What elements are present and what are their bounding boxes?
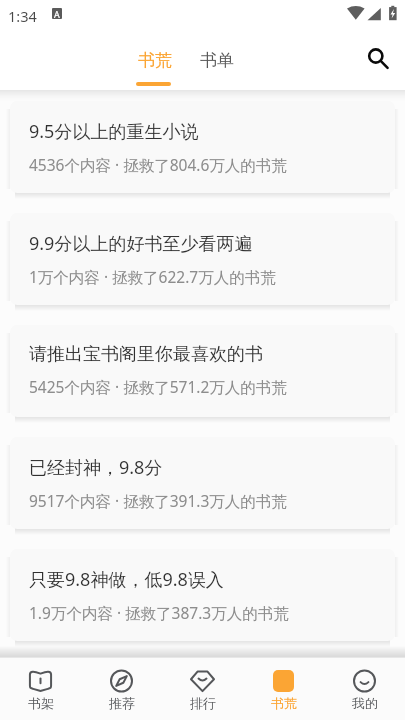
button[interactable]: Search: [356, 36, 396, 76]
button[interactable]: 9.5分以上的重生小说: [10, 101, 395, 193]
button[interactable]: 推荐: [81, 658, 162, 720]
staticText: 排行: [190, 695, 216, 711]
button[interactable]: 已经封神，9.8分: [10, 437, 395, 529]
staticText: 书架: [28, 695, 54, 711]
staticText: 1:34: [8, 6, 37, 26]
staticText: 4536个内容 · 拯救了804.6万人的书荒: [29, 154, 287, 175]
button[interactable]: 书单: [188, 34, 246, 86]
staticText: A: [54, 8, 60, 19]
button[interactable]: 9.9分以上的好书至少看两遍: [10, 213, 395, 305]
staticText: 已经封神，9.8分: [29, 455, 163, 480]
staticText: 1.9万个内容 · 拯救了387.3万人的书荒: [29, 602, 289, 623]
button[interactable]: 书架: [0, 658, 81, 720]
staticText: 9.5分以上的重生小说: [29, 119, 199, 144]
button[interactable]: 书荒: [126, 34, 184, 86]
staticText: 9517个内容 · 拯救了391.3万人的书荒: [29, 490, 287, 511]
button[interactable]: 书荒: [243, 658, 324, 720]
staticText: 9.9分以上的好书至少看两遍: [29, 231, 253, 256]
staticText: 书荒: [138, 50, 172, 71]
button[interactable]: 排行: [162, 658, 243, 720]
staticText: 书单: [200, 50, 234, 71]
staticText: 我的: [352, 695, 378, 711]
button[interactable]: 我的: [324, 658, 405, 720]
staticText: 1万个内容 · 拯救了622.7万人的书荒: [29, 266, 276, 287]
staticText: 5425个内容 · 拯救了571.2万人的书荒: [29, 376, 287, 397]
staticText: 请推出宝书阁里你最喜欢的书: [29, 343, 263, 366]
button[interactable]: 只要9.8神做，低9.8误入: [10, 549, 395, 641]
button[interactable]: 请推出宝书阁里你最喜欢的书: [10, 325, 395, 417]
staticText: 只要9.8神做，低9.8误入: [29, 567, 224, 592]
staticText: 书荒: [271, 695, 297, 711]
staticText: 推荐: [109, 695, 135, 711]
